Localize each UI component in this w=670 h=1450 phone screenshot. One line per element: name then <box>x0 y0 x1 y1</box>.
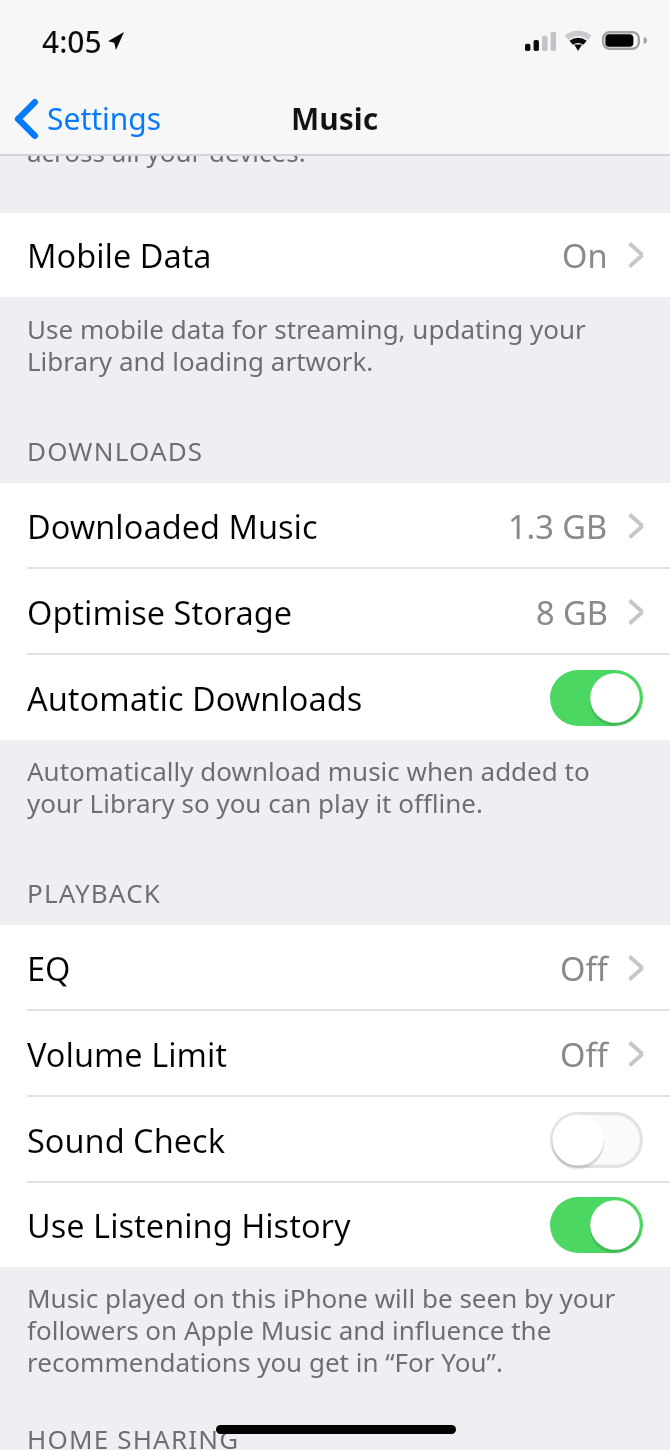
staticText: PLAYBACK <box>27 875 162 910</box>
staticText: across all your devices. <box>27 134 306 169</box>
button[interactable]: Use Listening History <box>0 1183 670 1267</box>
staticText: Off <box>560 946 608 990</box>
staticText: Mobile Data <box>27 233 212 277</box>
staticText: Volume Limit <box>27 1032 228 1076</box>
staticText: Off <box>560 1032 608 1076</box>
button[interactable]: Downloaded Music <box>0 483 670 569</box>
button[interactable]: Mobile Data <box>0 213 670 297</box>
staticText: Settings <box>47 98 162 139</box>
staticText: 4:05 <box>42 21 102 62</box>
staticText: Use mobile data for streaming, updating … <box>27 311 643 379</box>
button[interactable]: Sound Check <box>0 1097 670 1183</box>
staticText: Music <box>291 98 379 139</box>
staticText: On <box>562 233 608 277</box>
staticText: HOME SHARING <box>27 1421 240 1450</box>
button[interactable]: Switch on <box>550 1197 643 1253</box>
staticText: Music played on this iPhone will be seen… <box>27 1280 643 1380</box>
staticText: EQ <box>27 946 71 990</box>
button[interactable]: Optimise Storage <box>0 569 670 655</box>
staticText: 8 GB <box>536 590 608 634</box>
staticText: Use Listening History <box>27 1203 351 1247</box>
staticText: 1.3 GB <box>508 504 608 548</box>
staticText: Downloaded Music <box>27 504 318 548</box>
staticText: Optimise Storage <box>27 590 293 634</box>
staticText: DOWNLOADS <box>27 433 204 468</box>
button[interactable]: EQ <box>0 925 670 1011</box>
staticText: Automatically download music when added … <box>27 753 643 821</box>
button[interactable]: Switch on <box>550 670 643 726</box>
button[interactable]: Automatic Downloads <box>0 655 670 740</box>
staticText: Sound Check <box>27 1118 226 1162</box>
button[interactable]: Switch off <box>550 1112 643 1168</box>
staticText: Automatic Downloads <box>27 676 363 720</box>
button[interactable]: Volume Limit <box>0 1011 670 1097</box>
button[interactable]: Settings <box>15 98 162 139</box>
